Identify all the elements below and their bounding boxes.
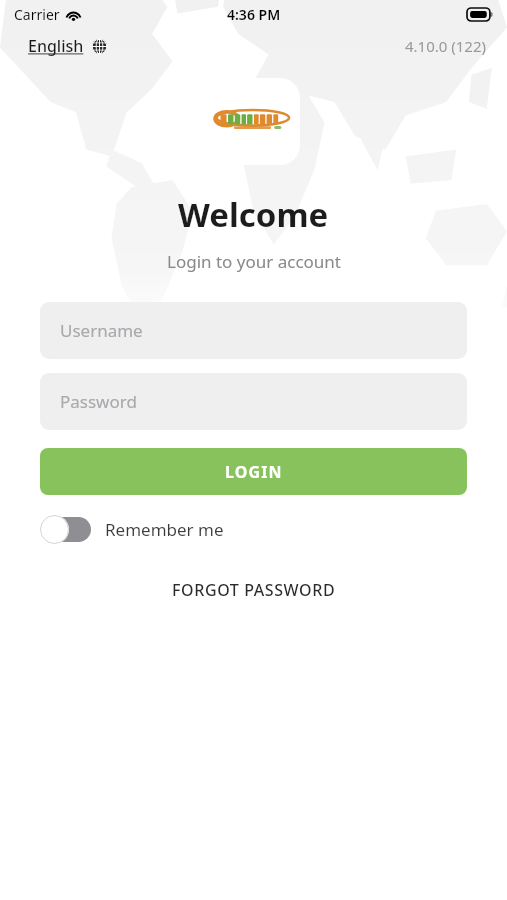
staticText: 4:36 PM [227, 5, 281, 24]
button[interactable]: English [24, 31, 111, 61]
button[interactable]: Remember me [105, 518, 224, 541]
staticText: Welcome [178, 192, 329, 237]
button[interactable]: LOGIN [40, 448, 467, 495]
button[interactable]: Remember me toggle [40, 514, 92, 544]
staticText: Login to your account [167, 250, 341, 273]
button[interactable]: Password [40, 373, 467, 430]
staticText: English [28, 35, 84, 57]
staticText: Username [60, 319, 143, 342]
button[interactable]: FORGOT PASSWORD [162, 575, 346, 605]
staticText: Password [60, 390, 137, 413]
button[interactable]: Username [40, 302, 467, 359]
staticText: Carrier [14, 5, 60, 24]
staticText: 4.10.0 (122) [405, 36, 487, 56]
staticText: LOGIN [225, 461, 283, 483]
